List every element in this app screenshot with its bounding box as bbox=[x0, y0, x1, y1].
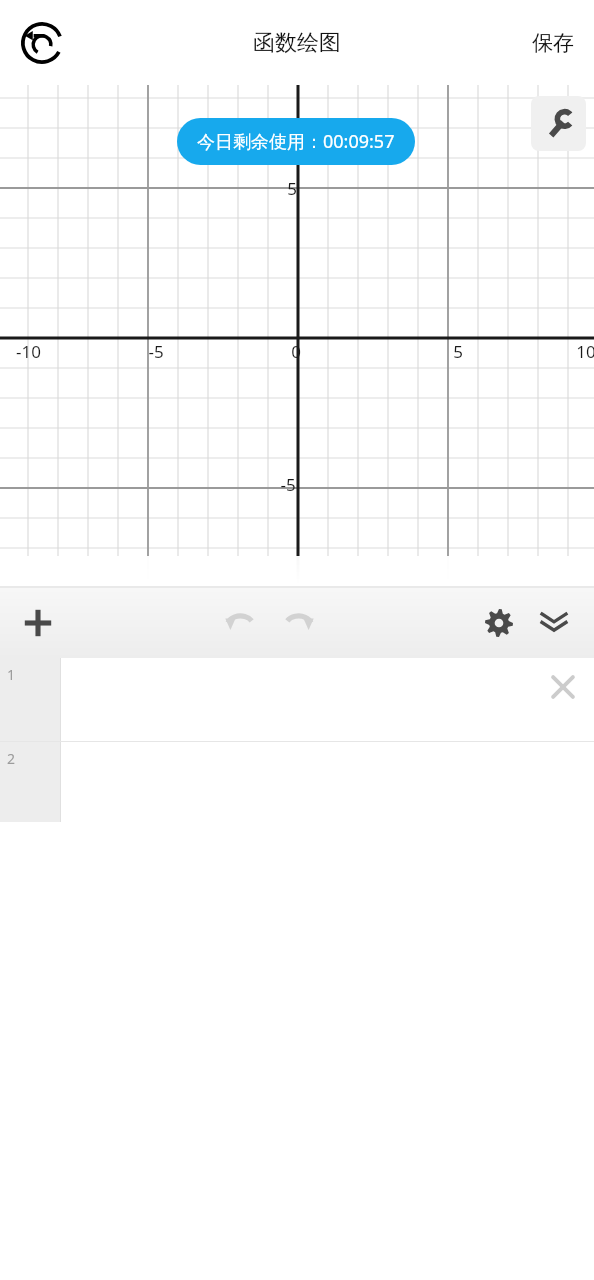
button[interactable]: 保存 bbox=[512, 16, 594, 70]
staticText: 5 bbox=[287, 177, 297, 200]
staticText: 1 bbox=[7, 665, 16, 684]
staticText: 5 bbox=[453, 340, 463, 363]
staticText: 0 bbox=[291, 340, 301, 363]
staticText: 函数绘图 bbox=[253, 29, 341, 57]
staticText: 10 bbox=[576, 340, 594, 363]
staticText: 保存 bbox=[532, 30, 574, 56]
button[interactable]: Add expression bbox=[10, 595, 66, 651]
button[interactable]: 2 bbox=[0, 742, 594, 822]
button[interactable]: Redo bbox=[271, 595, 327, 651]
button[interactable]: Tools bbox=[531, 96, 586, 151]
staticText: 2 bbox=[7, 749, 16, 768]
staticText: 今日剩余使用：00:09:57 bbox=[197, 129, 395, 154]
staticText: -10 bbox=[16, 340, 41, 363]
button[interactable]: Undo bbox=[212, 595, 268, 651]
button[interactable]: Back bbox=[14, 15, 70, 71]
button[interactable]: Collapse bbox=[526, 595, 582, 651]
staticText: -5 bbox=[280, 473, 296, 496]
button[interactable]: 今日剩余使用：00:09:57 bbox=[177, 118, 415, 165]
button[interactable]: 1 bbox=[0, 658, 594, 741]
staticText: -5 bbox=[148, 340, 164, 363]
button[interactable]: Delete expression bbox=[538, 662, 588, 712]
button[interactable]: Settings bbox=[471, 595, 527, 651]
